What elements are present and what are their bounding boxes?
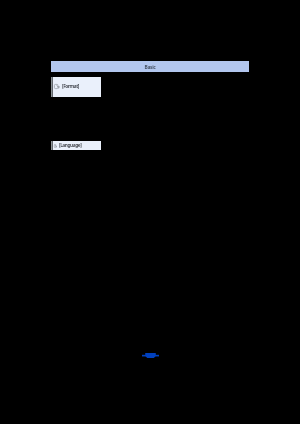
staticText: Basic xyxy=(144,64,156,71)
button[interactable]: Open xyxy=(51,77,101,97)
other: Open xyxy=(54,84,60,89)
other: Open xyxy=(54,144,57,148)
button[interactable]: Connector node xyxy=(142,353,159,358)
staticText: [Language] xyxy=(59,142,82,149)
staticText: [Format] xyxy=(62,83,79,90)
button[interactable]: Basic xyxy=(51,61,249,72)
button[interactable]: Open xyxy=(51,141,101,150)
